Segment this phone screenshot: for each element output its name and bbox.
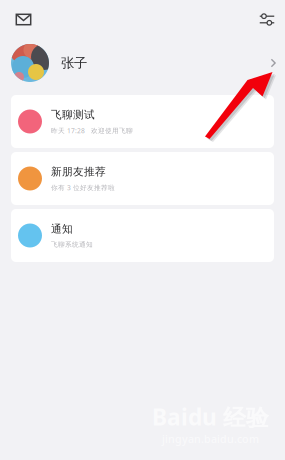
button[interactable]: 通知 [11, 209, 274, 262]
staticText: 张子 [61, 55, 87, 71]
staticText: Baidu 经验 [152, 402, 269, 432]
staticText: 昨天 17:28 欢迎使用飞聊 [51, 126, 133, 135]
button[interactable]: Mail [5, 3, 42, 35]
button[interactable]: 飞聊测试 [11, 95, 274, 148]
button[interactable]: Filter [251, 3, 283, 35]
staticText: 新朋友推荐 [51, 165, 106, 178]
staticText: 飞聊系统通知 [51, 240, 93, 249]
staticText: 飞聊测试 [51, 108, 95, 121]
button[interactable]: 新朋友推荐 [11, 152, 274, 205]
staticText: 通知 [51, 222, 73, 235]
staticText: 你有 3 位好友推荐啦 [51, 183, 115, 192]
button[interactable]: 张子 [0, 39, 285, 87]
